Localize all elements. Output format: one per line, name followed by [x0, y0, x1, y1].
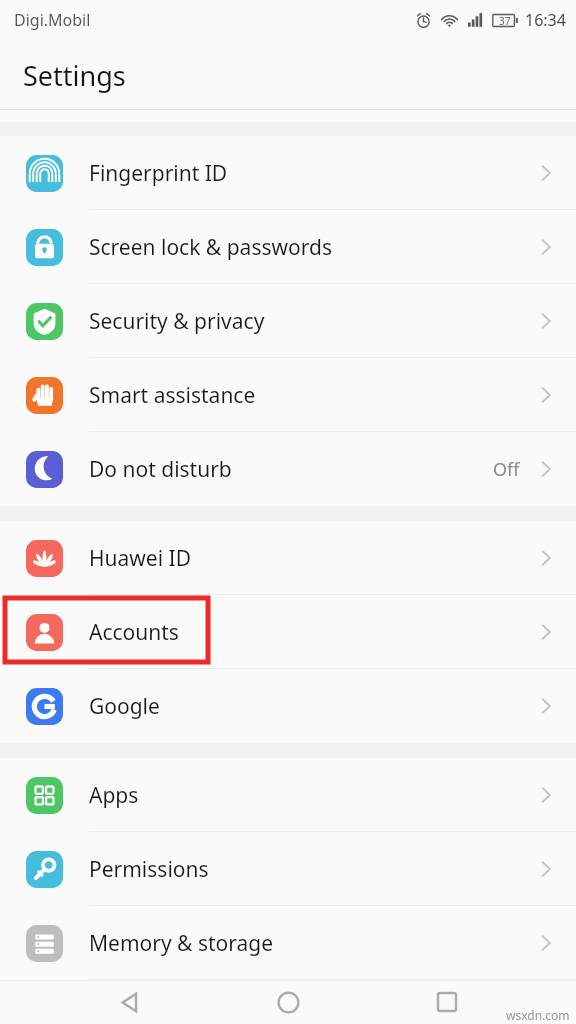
button[interactable]: Apps	[0, 758, 576, 832]
button[interactable]: Fingerprint ID	[0, 136, 576, 210]
button[interactable]: Home	[259, 980, 317, 1024]
button[interactable]: Memory & storage	[0, 906, 576, 980]
button[interactable]: Smart assistance	[0, 358, 576, 432]
button[interactable]: Security & privacy	[0, 284, 576, 358]
staticText: Accounts	[89, 618, 534, 647]
staticText: Memory & storage	[89, 929, 534, 958]
staticText: Digi.Mobil	[14, 9, 91, 31]
staticText: Google	[89, 692, 534, 721]
button[interactable]: Accounts	[0, 595, 576, 669]
button[interactable]: Back	[101, 980, 159, 1024]
button[interactable]: Recents	[418, 980, 476, 1024]
staticText: Fingerprint ID	[89, 159, 534, 188]
staticText: wsxdn.com	[506, 1007, 570, 1023]
button[interactable]: Screen lock & passwords	[0, 210, 576, 284]
staticText: Settings	[23, 57, 126, 94]
staticText: 37	[499, 14, 511, 28]
button[interactable]: Permissions	[0, 832, 576, 906]
button[interactable]: Do not disturb	[0, 432, 576, 506]
staticText: Screen lock & passwords	[89, 233, 534, 262]
button[interactable]: Google	[0, 669, 576, 743]
staticText: Huawei ID	[89, 544, 534, 573]
staticText: Security & privacy	[89, 307, 534, 336]
staticText: Do not disturb	[89, 455, 493, 484]
staticText: Apps	[89, 781, 534, 810]
staticText: Permissions	[89, 855, 534, 884]
button[interactable]: Huawei ID	[0, 521, 576, 595]
staticText: Off	[493, 457, 520, 482]
staticText: 16:34	[525, 9, 566, 31]
staticText: Smart assistance	[89, 381, 534, 410]
